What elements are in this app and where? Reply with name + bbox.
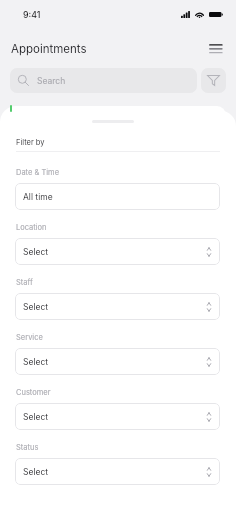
button[interactable]: Menu [205,38,227,58]
staticText: Service [16,333,43,342]
staticText: Select [23,412,49,422]
button[interactable]: Filter [201,68,226,93]
staticText: 9:41 [23,9,41,20]
staticText: Filter by [16,138,45,147]
button[interactable]: Search [10,68,197,93]
staticText: Select [23,302,49,312]
button[interactable]: All time [15,183,220,210]
staticText: Status [16,443,39,452]
staticText: Select [23,357,49,367]
button[interactable]: Select [15,238,220,265]
staticText: Select [23,247,49,257]
button[interactable]: Select [15,458,220,485]
staticText: Date & Time [16,168,60,177]
staticText: Customer [16,388,51,397]
button[interactable]: Select [15,348,220,375]
staticText: Location [16,223,47,232]
staticText: Staff [16,278,33,287]
staticText: Appointments [11,42,87,56]
button[interactable]: Select [15,403,220,430]
staticText: Select [23,467,49,477]
staticText: All time [23,192,53,202]
button[interactable]: Select [15,293,220,320]
staticText: Search [37,76,66,86]
